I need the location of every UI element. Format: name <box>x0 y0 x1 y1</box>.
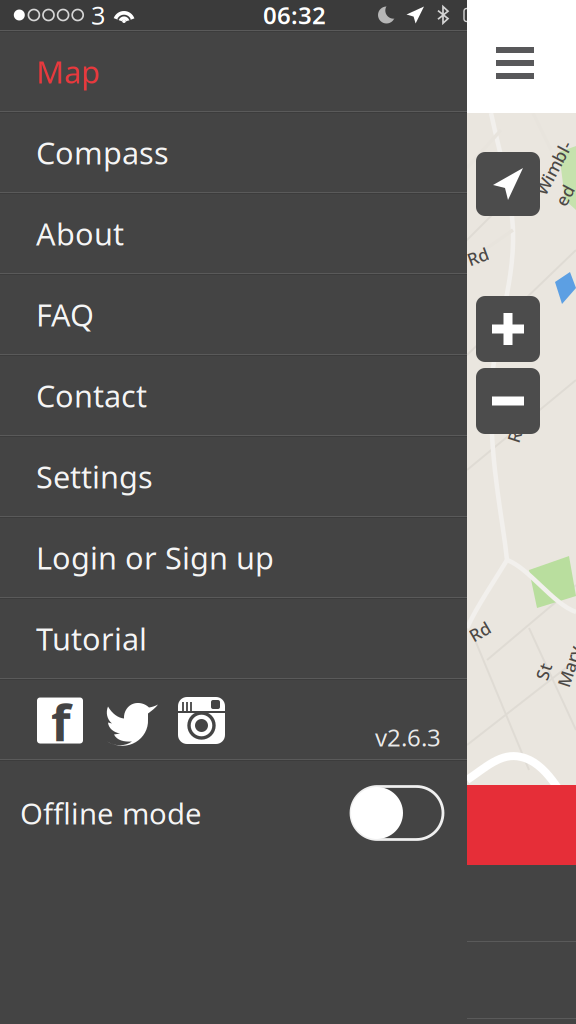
button[interactable]: Settings <box>0 437 467 516</box>
button[interactable]: About <box>0 194 467 273</box>
button[interactable]: Menu <box>496 47 534 79</box>
staticText: Rd <box>467 245 489 268</box>
button[interactable]: Facebook <box>37 697 83 743</box>
staticText: f <box>51 688 71 755</box>
button[interactable]: Zoom out <box>476 368 540 434</box>
staticText: Wimbled <box>534 150 576 196</box>
staticText: Contact <box>36 375 147 416</box>
staticText: Rd <box>469 620 491 643</box>
staticText: Rd <box>505 420 527 443</box>
staticText: St Mary <box>537 640 576 686</box>
button[interactable]: Zoom in <box>476 296 540 362</box>
button[interactable]: FAQ <box>0 275 467 354</box>
button[interactable]: Login or Sign up <box>0 518 467 597</box>
staticText: v2.6.3 <box>375 721 441 753</box>
staticText: Wimbled <box>534 150 576 196</box>
button[interactable]: Tutorial <box>0 599 467 678</box>
button[interactable]: Compass <box>0 113 467 192</box>
button[interactable]: Instagram <box>178 697 225 744</box>
staticText: Offline mode <box>20 793 202 832</box>
staticText: Rd <box>469 620 491 643</box>
staticText: Map <box>36 51 100 92</box>
button[interactable]: Locate me <box>476 152 540 216</box>
staticText: 3 <box>91 0 105 32</box>
staticText: Rd <box>467 245 489 268</box>
button[interactable]: Contact <box>0 356 467 435</box>
staticText: Compass <box>36 132 169 173</box>
staticText: Tutorial <box>36 618 147 659</box>
staticText: Login or Sign up <box>36 537 274 578</box>
staticText: FAQ <box>36 294 94 335</box>
button[interactable]: Twitter <box>106 697 159 743</box>
button[interactable]: Locate me <box>476 152 540 216</box>
button[interactable]: Offline mode <box>0 761 467 865</box>
staticText: 06:32 <box>263 0 326 31</box>
button[interactable]: Zoom out <box>476 368 540 434</box>
staticText: Settings <box>36 456 153 497</box>
staticText: Rd <box>505 420 527 443</box>
button[interactable]: Map <box>0 32 467 111</box>
staticText: About <box>36 213 124 254</box>
staticText: St Mary <box>537 640 576 686</box>
button[interactable]: Menu <box>496 47 534 79</box>
button[interactable]: Zoom in <box>476 296 540 362</box>
